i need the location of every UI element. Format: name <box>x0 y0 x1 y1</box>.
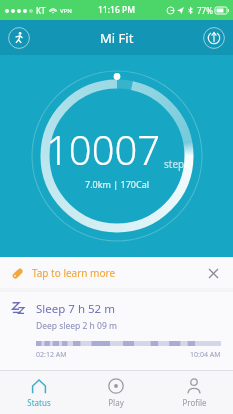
staticText: Sleep 7 h 52 m <box>36 301 115 317</box>
button[interactable]: Sleep 7 h 52 m <box>0 292 233 370</box>
staticText: steps <box>164 157 189 171</box>
staticText: Status <box>27 397 51 408</box>
button[interactable]: Dismiss <box>205 265 221 281</box>
staticText: Profile <box>182 397 207 408</box>
button[interactable]: Profile <box>155 371 233 414</box>
button[interactable]: Play <box>77 371 155 414</box>
button[interactable]: Activity <box>8 27 30 49</box>
staticText: 10:04 AM <box>190 350 221 360</box>
staticText: Tap to learn more <box>32 266 116 280</box>
staticText: Play <box>108 397 124 408</box>
staticText: KT <box>36 5 46 16</box>
staticText: 02:12 AM <box>36 350 67 360</box>
button[interactable]: Tap to learn more <box>0 257 233 288</box>
staticText: Deep sleep 2 h 09 m <box>36 320 117 332</box>
button[interactable]: Sync <box>203 27 225 49</box>
button[interactable]: Status <box>0 371 77 414</box>
staticText: 7.0km | 170Cal <box>85 178 150 190</box>
staticText: Mi Fit <box>100 29 134 47</box>
staticText: VPN <box>60 7 72 15</box>
staticText: 77% <box>197 5 213 16</box>
staticText: 10007 <box>46 122 161 176</box>
staticText: 11:16 PM <box>98 4 135 16</box>
